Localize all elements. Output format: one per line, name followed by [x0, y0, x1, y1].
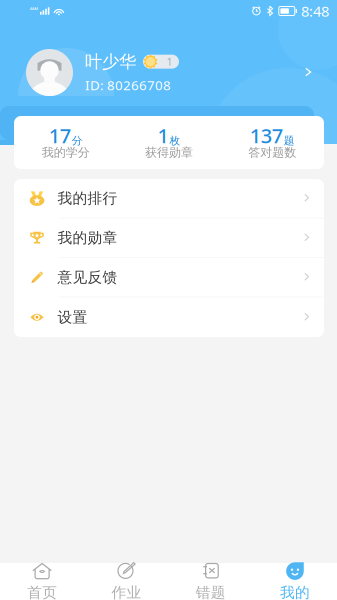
staticText: 8:48: [301, 1, 329, 21]
staticText: 我的排行: [57, 189, 117, 207]
staticText: 1: [157, 122, 168, 149]
staticText: 枚: [169, 134, 180, 147]
staticText: ID: 80266708: [85, 76, 171, 94]
staticText: 我的: [280, 583, 310, 600]
staticText: 17: [49, 122, 71, 149]
staticText: 错题: [196, 583, 226, 600]
staticText: 分: [72, 134, 83, 147]
button[interactable]: 错题: [168, 563, 253, 600]
button[interactable]: 我的: [253, 563, 337, 600]
staticText: 作业: [111, 583, 141, 600]
staticText: 我的勋章: [57, 229, 117, 247]
button[interactable]: 作业: [84, 563, 168, 600]
button[interactable]: 我的勋章: [14, 218, 324, 258]
staticText: 答对题数: [248, 145, 296, 160]
button[interactable]: 我的排行: [14, 179, 324, 218]
button[interactable]: 设置: [14, 297, 324, 337]
button[interactable]: 意见反馈: [14, 258, 324, 297]
staticText: 我的学分: [42, 145, 90, 160]
staticText: 获得勋章: [145, 145, 193, 160]
staticText: 叶少华: [85, 51, 136, 72]
staticText: ““: [30, 4, 38, 18]
staticText: 137: [250, 122, 283, 149]
staticText: 首页: [27, 583, 57, 600]
staticText: 意见反馈: [57, 268, 117, 286]
staticText: 设置: [57, 308, 87, 326]
staticText: 题: [284, 134, 295, 147]
button[interactable]: 首页: [0, 563, 84, 600]
staticText: 1: [166, 55, 172, 69]
button[interactable]: 叶少华: [0, 49, 337, 96]
